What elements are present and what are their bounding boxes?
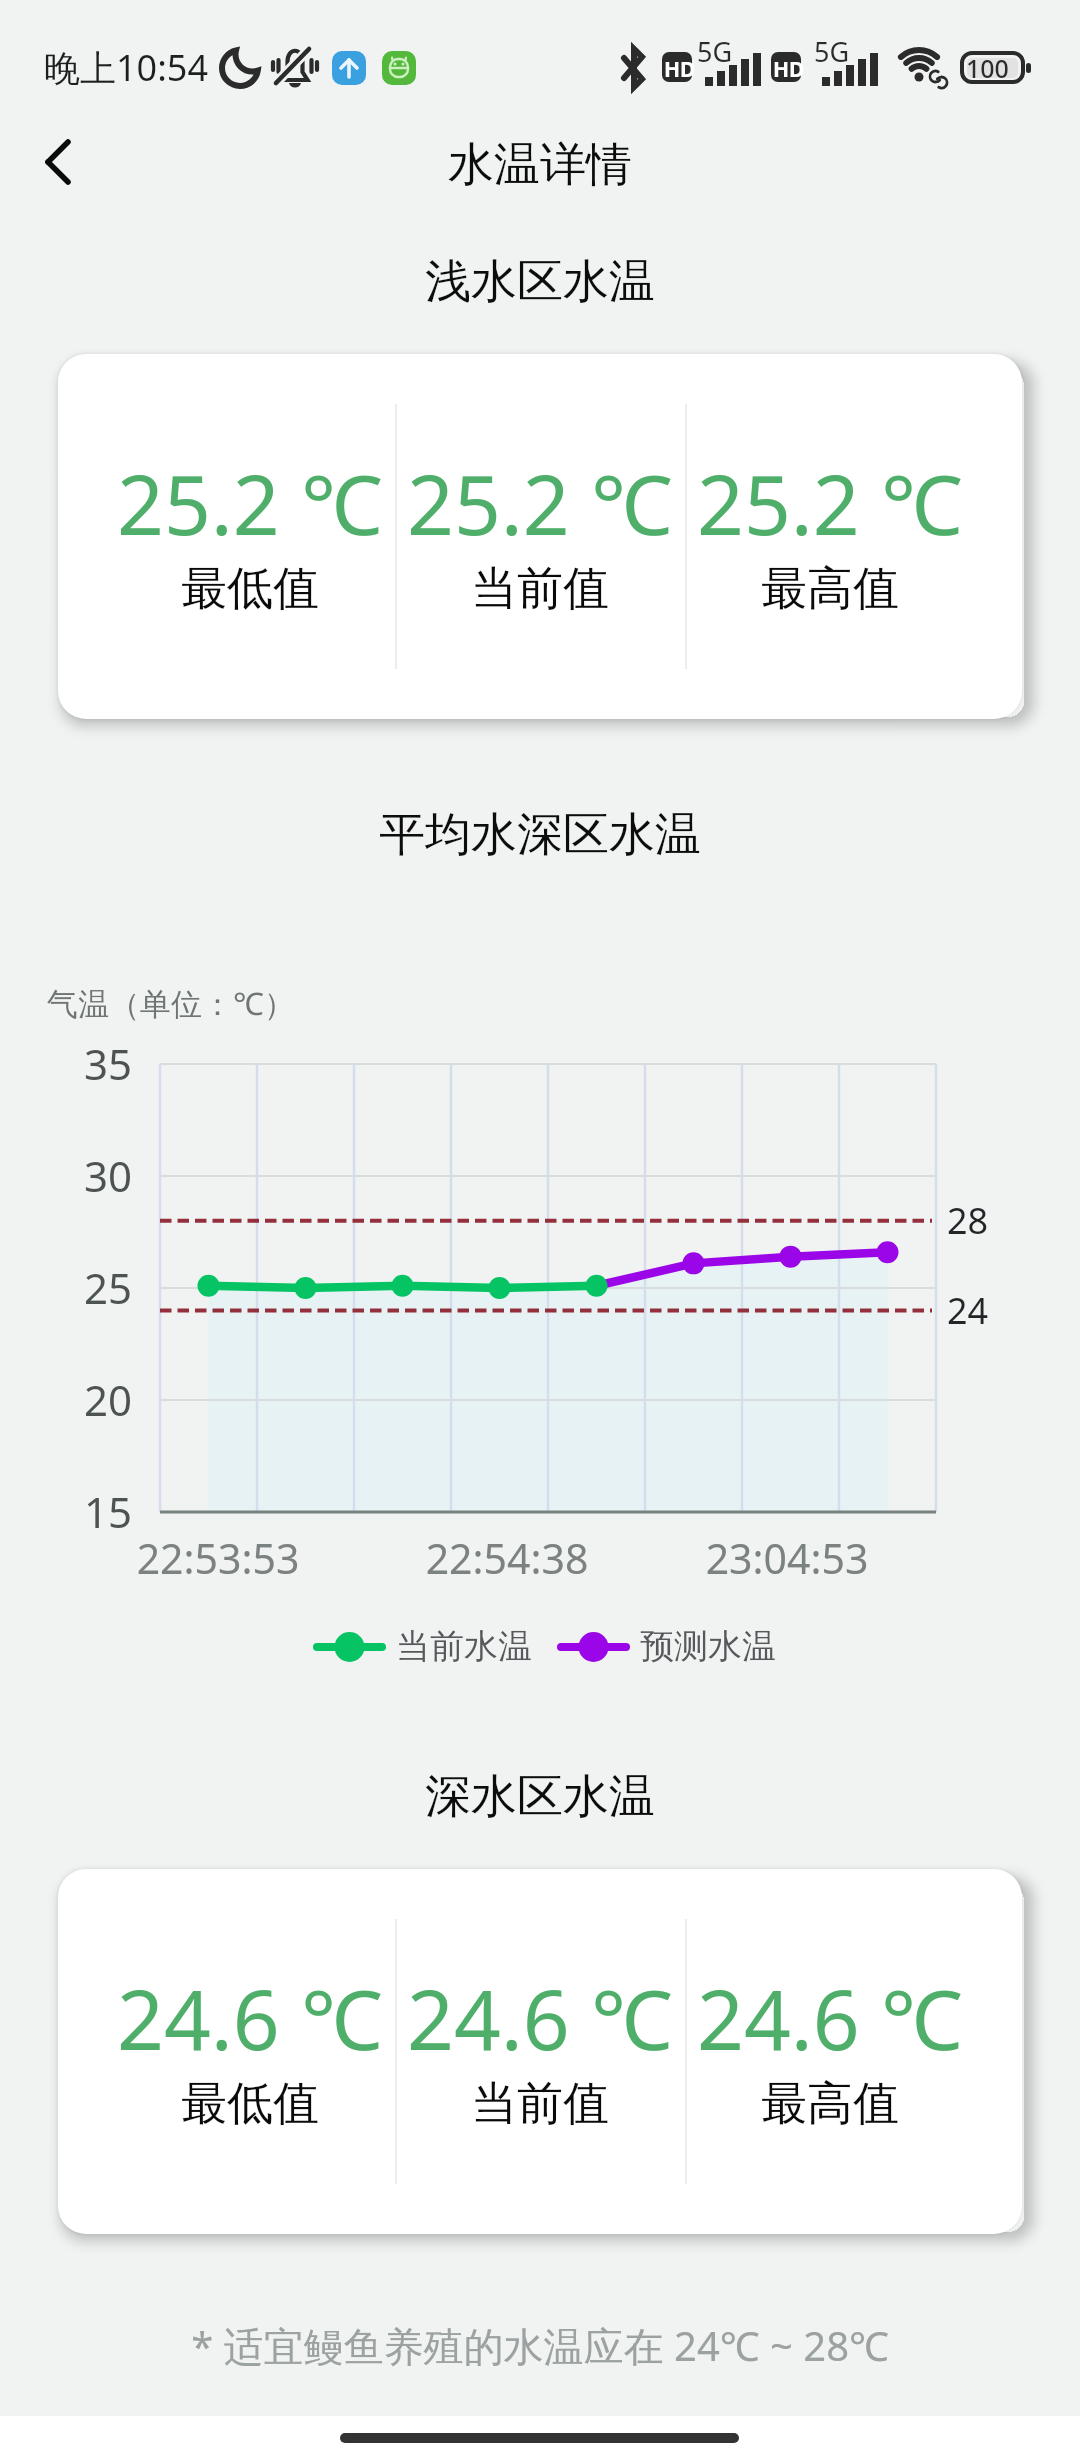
button[interactable]: 当前水温 — [315, 1625, 532, 1668]
staticText: 28 — [947, 1196, 989, 1245]
staticText: 24.6 ℃ — [697, 1962, 963, 2074]
button[interactable]: 预测水温 — [559, 1625, 776, 1668]
staticText: 当前值 — [471, 560, 609, 618]
staticText: 晚上10:54 — [44, 43, 209, 92]
staticText: 深水区水温 — [0, 1768, 1080, 1826]
staticText: 25.2 ℃ — [117, 447, 383, 559]
staticText: 30 — [60, 1147, 132, 1204]
button[interactable]: 25.2 ℃ — [58, 354, 1022, 719]
staticText: 浅水区水温 — [0, 253, 1080, 311]
staticText: 24.6 ℃ — [407, 1962, 673, 2074]
staticText: 当前水温 — [396, 1625, 532, 1668]
staticText: * 适宜鳗鱼养殖的水温应在 24℃ ~ 28℃ — [0, 2318, 1080, 2373]
button[interactable]: Back — [16, 118, 100, 202]
staticText: 24 — [947, 1286, 989, 1335]
staticText: 最高值 — [761, 2075, 899, 2133]
staticText: 24.6 ℃ — [117, 1962, 383, 2074]
staticText: 最低值 — [181, 2075, 319, 2133]
staticText: 最低值 — [181, 560, 319, 618]
staticText: HD — [773, 55, 805, 84]
staticText: 15 — [60, 1483, 132, 1540]
staticText: 22:53:53 — [98, 1530, 338, 1586]
staticText: 平均水深区水温 — [0, 806, 1080, 864]
staticText: 5G — [697, 33, 733, 70]
staticText: 100 — [966, 51, 1009, 85]
staticText: HD — [664, 55, 696, 84]
staticText: 最高值 — [761, 560, 899, 618]
staticText: 当前值 — [471, 2075, 609, 2133]
staticText: 气温（单位：℃） — [47, 982, 295, 1024]
staticText: 预测水温 — [640, 1625, 776, 1668]
staticText: 25 — [60, 1259, 132, 1316]
staticText: 5G — [814, 33, 850, 70]
staticText: 25.2 ℃ — [697, 447, 963, 559]
staticText: 水温详情 — [448, 136, 632, 194]
button[interactable]: 24.6 ℃ — [58, 1869, 1022, 2234]
staticText: 22:54:38 — [387, 1530, 627, 1586]
staticText: 23:04:53 — [667, 1530, 907, 1586]
staticText: 20 — [60, 1371, 132, 1428]
staticText: 25.2 ℃ — [407, 447, 673, 559]
staticText: 35 — [60, 1035, 132, 1092]
